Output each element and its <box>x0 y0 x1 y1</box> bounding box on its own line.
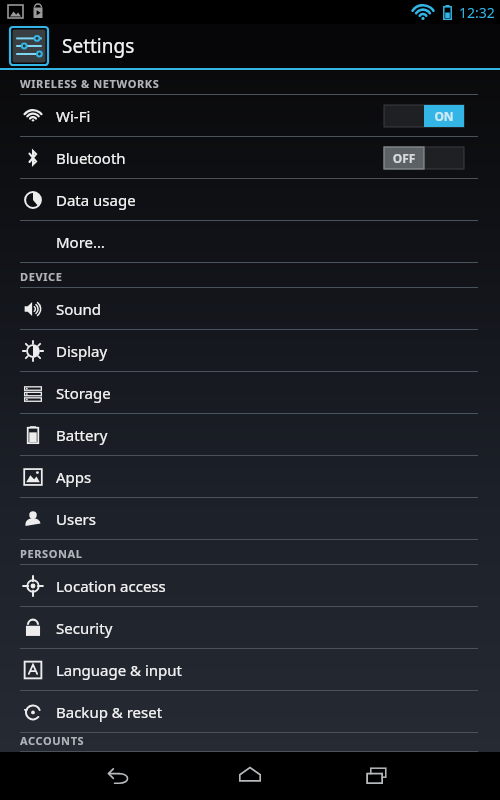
button[interactable]: Users <box>0 498 500 539</box>
button[interactable]: Battery <box>0 414 500 455</box>
button[interactable]: Toggle off <box>384 147 464 169</box>
staticText: ACCOUNTS <box>20 733 85 748</box>
staticText: Location access <box>56 576 166 596</box>
button[interactable]: Sound <box>0 288 500 329</box>
button[interactable]: Language & input <box>0 649 500 690</box>
button[interactable]: Bluetooth <box>0 137 500 178</box>
button[interactable]: Recent apps <box>350 752 406 800</box>
button[interactable]: Apps <box>0 456 500 497</box>
staticText: DEVICE <box>20 269 63 284</box>
staticText: Display <box>56 341 108 361</box>
button[interactable]: Back <box>94 752 150 800</box>
staticText: Battery <box>56 425 108 445</box>
button[interactable]: Toggle on <box>384 105 464 127</box>
button[interactable]: Display <box>0 330 500 371</box>
button[interactable]: Location access <box>0 565 500 606</box>
button[interactable]: More… <box>0 221 500 262</box>
staticText: Users <box>56 509 96 529</box>
button[interactable]: Storage <box>0 372 500 413</box>
staticText: Bluetooth <box>56 148 126 168</box>
staticText: More… <box>56 232 105 252</box>
staticText: 12:32 <box>459 3 495 22</box>
button[interactable]: Wi-Fi <box>0 95 500 136</box>
staticText: Security <box>56 618 113 638</box>
staticText: Language & input <box>56 660 182 680</box>
staticText: Apps <box>56 467 92 487</box>
staticText: Sound <box>56 299 102 319</box>
staticText: ON <box>424 108 464 124</box>
staticText: Backup & reset <box>56 702 163 722</box>
staticText: PERSONAL <box>20 546 83 561</box>
button[interactable]: Security <box>0 607 500 648</box>
button[interactable]: Backup & reset <box>0 691 500 732</box>
staticText: Data usage <box>56 190 136 210</box>
button[interactable]: Home <box>222 752 278 800</box>
staticText: Settings <box>62 33 135 59</box>
staticText: WIRELESS & NETWORKS <box>20 76 160 91</box>
button[interactable]: Data usage <box>0 179 500 220</box>
staticText: Storage <box>56 383 111 403</box>
staticText: Wi-Fi <box>56 106 91 126</box>
staticText: OFF <box>384 150 424 166</box>
